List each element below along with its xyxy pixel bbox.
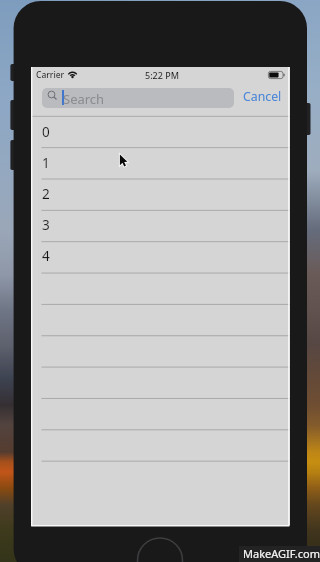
staticText: MakeAGIF.com [243, 546, 320, 561]
staticText: 1 [42, 154, 50, 172]
button[interactable]: 4 [31, 240, 290, 271]
staticText: 5:22 PM [145, 69, 179, 81]
button[interactable]: 1 [31, 147, 290, 178]
button[interactable]: Cancel [238, 86, 287, 106]
staticText: 4 [42, 247, 50, 265]
button[interactable]: 3 [31, 209, 290, 240]
button[interactable]: 0 [31, 116, 290, 147]
staticText: Cancel [243, 88, 282, 105]
button[interactable]: Search field [42, 88, 234, 108]
staticText: 0 [42, 123, 50, 141]
staticText: 3 [42, 216, 50, 234]
staticText: 2 [42, 185, 50, 203]
other: Battery [268, 71, 285, 79]
button[interactable]: 2 [31, 178, 290, 209]
staticText: Carrier [36, 69, 65, 81]
staticText: Search [63, 90, 105, 108]
